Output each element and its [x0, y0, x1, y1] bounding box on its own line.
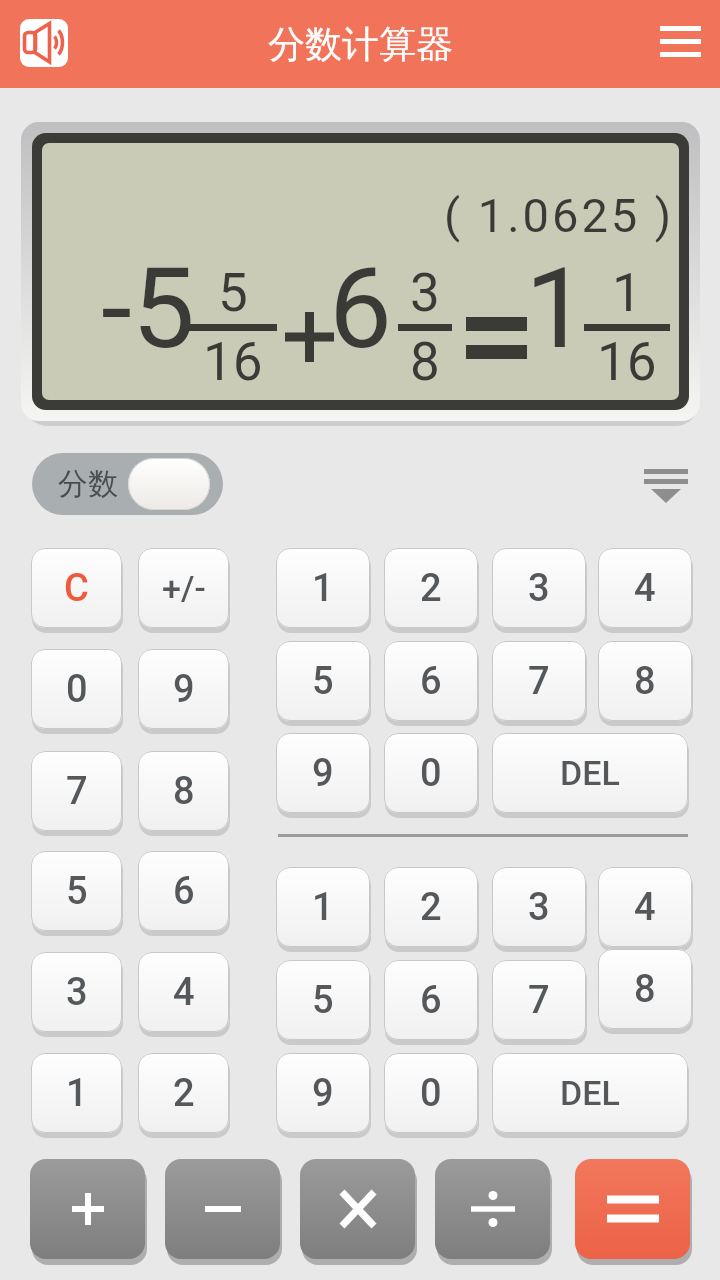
- staticText: 2: [420, 885, 442, 930]
- staticText: 3: [66, 970, 88, 1015]
- staticText: 5: [312, 978, 334, 1023]
- button[interactable]: 2: [384, 867, 478, 947]
- staticText: +/-: [162, 568, 206, 608]
- staticText: 3: [528, 885, 550, 930]
- button[interactable]: 7: [492, 960, 586, 1040]
- button[interactable]: 6: [138, 851, 229, 931]
- staticText: 8: [173, 769, 195, 814]
- staticText: 5: [312, 659, 334, 704]
- button[interactable]: 1: [276, 867, 370, 947]
- button[interactable]: 1: [31, 1053, 122, 1133]
- staticText: 16: [597, 331, 657, 393]
- staticText: 2: [420, 566, 442, 611]
- staticText: 6: [420, 659, 442, 704]
- button[interactable]: +/-: [138, 548, 229, 628]
- button[interactable]: 7: [31, 751, 122, 831]
- staticText: 8: [634, 659, 656, 704]
- button[interactable]: 8: [598, 949, 692, 1029]
- staticText: 1: [525, 243, 588, 374]
- staticText: 1: [612, 262, 642, 324]
- button[interactable]: 9: [276, 1053, 370, 1133]
- staticText: ( 1.0625 ): [444, 188, 675, 243]
- staticText: 4: [634, 885, 656, 930]
- button[interactable]: 4: [138, 952, 229, 1032]
- button[interactable]: 3: [492, 867, 586, 947]
- button[interactable]: 0: [31, 649, 122, 729]
- button[interactable]: [20, 19, 68, 67]
- staticText: 2: [173, 1071, 195, 1116]
- staticText: 0: [420, 1071, 442, 1116]
- staticText: 8: [634, 967, 656, 1012]
- staticText: 7: [528, 659, 550, 704]
- button[interactable]: 2: [138, 1053, 229, 1133]
- staticText: 5: [218, 262, 248, 324]
- staticText: 9: [312, 751, 334, 796]
- button[interactable]: 3: [492, 548, 586, 628]
- button[interactable]: DEL: [492, 733, 688, 813]
- staticText: DEL: [560, 753, 620, 793]
- button[interactable]: 8: [598, 641, 692, 721]
- staticText: 7: [528, 978, 550, 1023]
- staticText: 1: [312, 885, 334, 930]
- button[interactable]: DEL: [492, 1053, 688, 1133]
- button[interactable]: 5: [276, 641, 370, 721]
- button[interactable]: C: [31, 548, 122, 628]
- staticText: 1: [66, 1071, 88, 1116]
- staticText: 4: [634, 566, 656, 611]
- button[interactable]: [435, 1159, 550, 1259]
- button[interactable]: 8: [138, 751, 229, 831]
- button[interactable]: 9: [138, 649, 229, 729]
- staticText: 7: [66, 769, 88, 814]
- staticText: 分数: [58, 465, 118, 503]
- staticText: -5: [101, 243, 195, 374]
- button[interactable]: 3: [31, 952, 122, 1032]
- button[interactable]: 1: [276, 548, 370, 628]
- staticText: 5: [66, 869, 88, 914]
- staticText: 1: [312, 566, 334, 611]
- button[interactable]: 0: [384, 733, 478, 813]
- button[interactable]: 7: [492, 641, 586, 721]
- staticText: 分数计算器: [268, 21, 453, 68]
- button[interactable]: [165, 1159, 280, 1259]
- button[interactable]: [575, 1159, 690, 1259]
- staticText: 4: [173, 970, 195, 1015]
- staticText: 6: [329, 243, 392, 374]
- staticText: 6: [173, 869, 195, 914]
- button[interactable]: 4: [598, 867, 692, 947]
- staticText: 8: [410, 331, 440, 393]
- button[interactable]: [300, 1159, 415, 1259]
- button[interactable]: 6: [384, 960, 478, 1040]
- button[interactable]: 4: [598, 548, 692, 628]
- button[interactable]: 0: [384, 1053, 478, 1133]
- button[interactable]: [650, 16, 710, 68]
- staticText: 9: [173, 667, 195, 712]
- staticText: 16: [203, 331, 263, 393]
- staticText: 0: [420, 751, 442, 796]
- staticText: C: [64, 566, 89, 611]
- staticText: 3: [410, 262, 440, 324]
- button[interactable]: 分数: [32, 453, 223, 515]
- staticText: DEL: [560, 1073, 620, 1113]
- staticText: 6: [420, 978, 442, 1023]
- staticText: 9: [312, 1071, 334, 1116]
- button[interactable]: 5: [31, 851, 122, 931]
- staticText: 0: [66, 667, 88, 712]
- button[interactable]: [30, 1159, 145, 1259]
- button[interactable]: 2: [384, 548, 478, 628]
- staticText: 3: [528, 566, 550, 611]
- button[interactable]: 6: [384, 641, 478, 721]
- button[interactable]: 9: [276, 733, 370, 813]
- button[interactable]: 5: [276, 960, 370, 1040]
- button[interactable]: [636, 460, 696, 512]
